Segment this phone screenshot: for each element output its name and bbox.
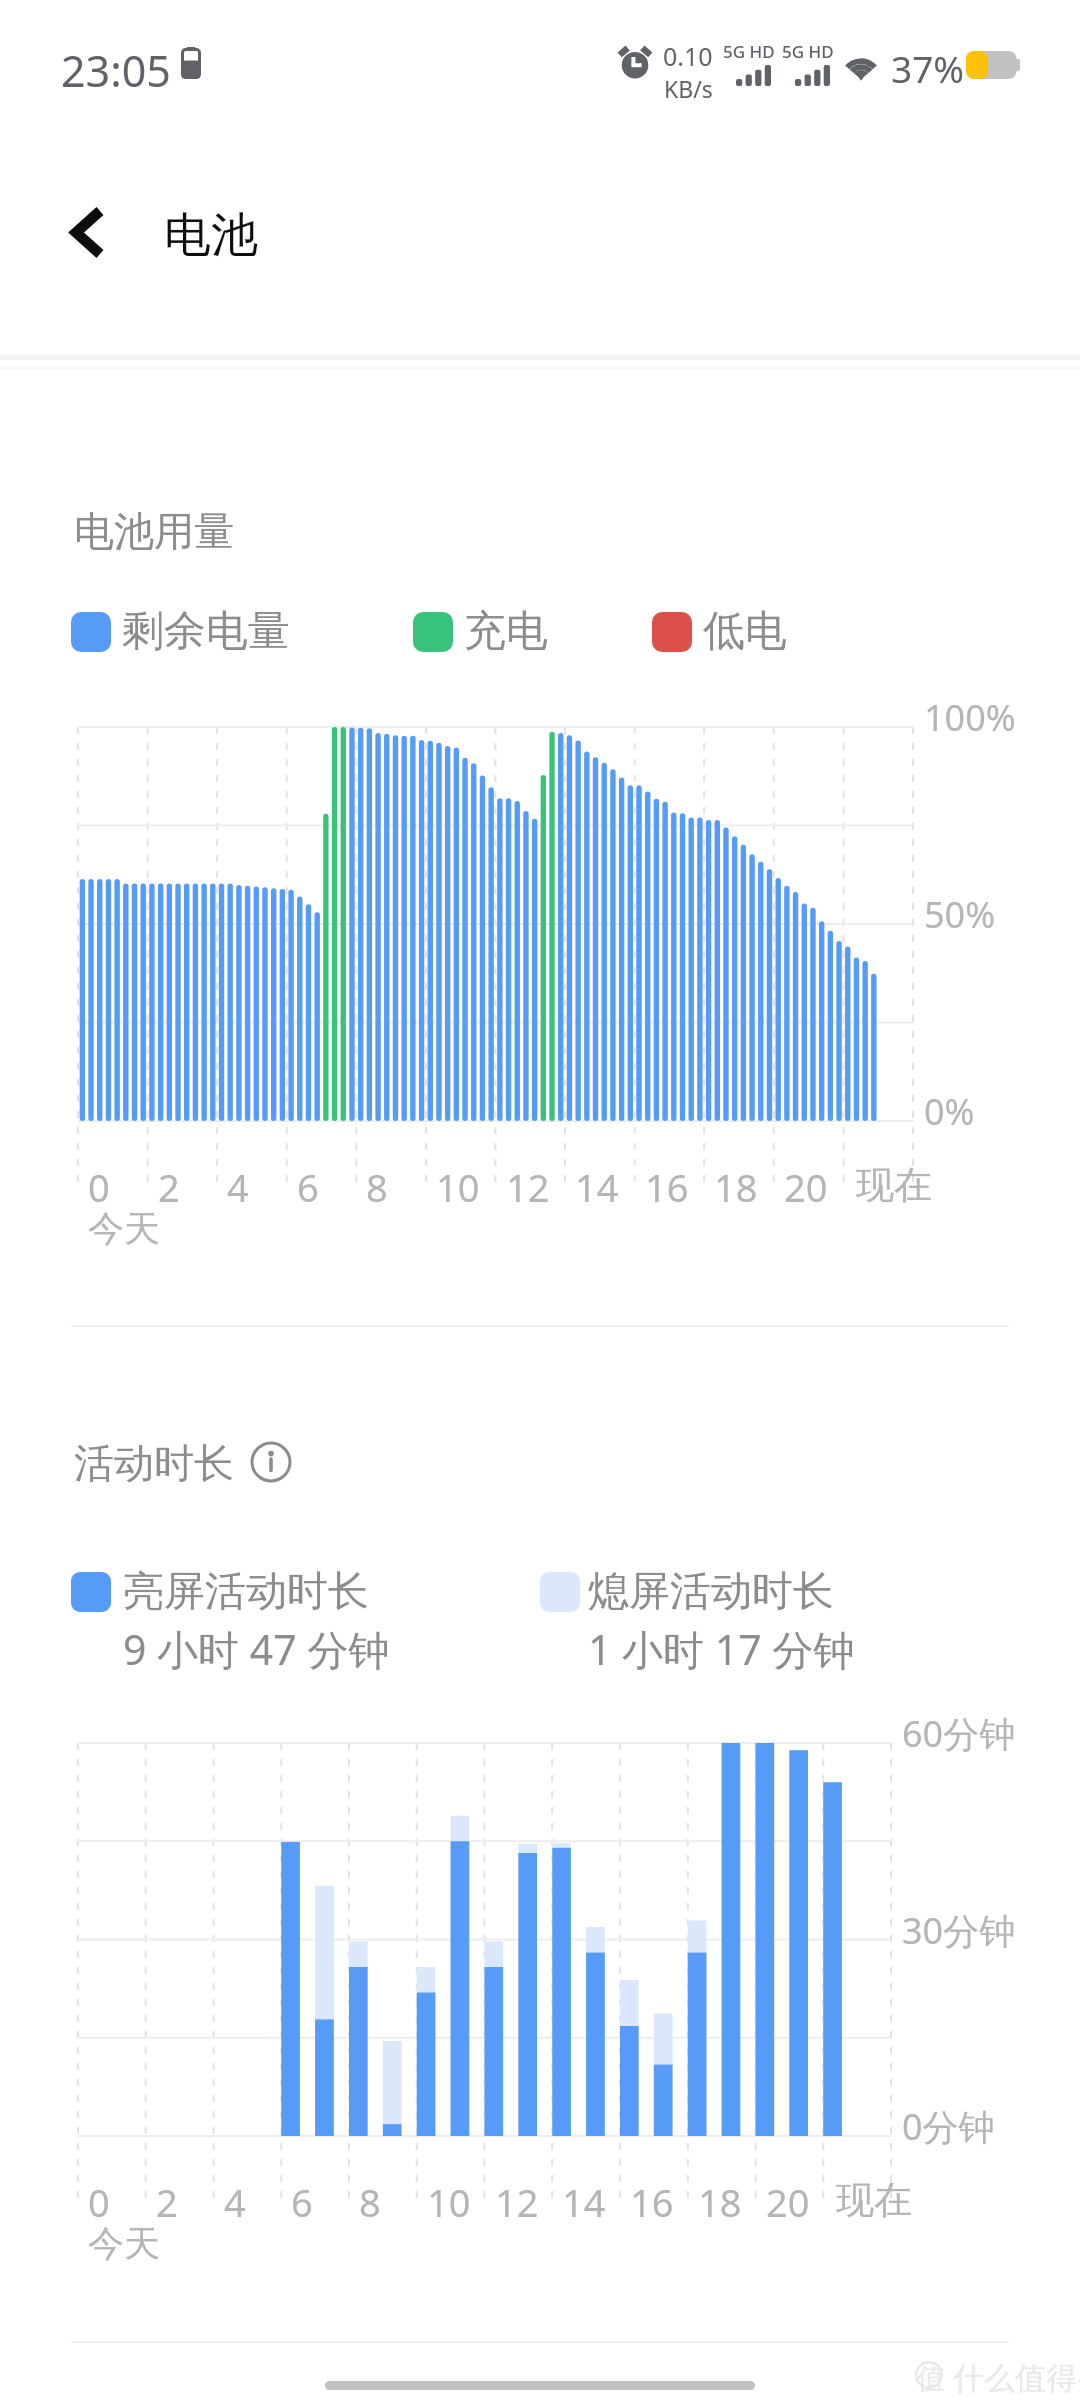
staticText: 剩余电量 <box>122 605 290 658</box>
staticText: 8 <box>359 2176 381 2228</box>
staticText: 12 <box>495 2176 539 2228</box>
staticText: 16 <box>645 1161 689 1213</box>
staticText: 0分钟 <box>902 2102 995 2151</box>
button[interactable]: Back <box>35 178 145 288</box>
staticText: 什么值得买 <box>953 2359 1080 2398</box>
staticText: 现在 <box>836 2176 912 2224</box>
button[interactable]: 剩余电量 <box>71 605 290 658</box>
staticText: 8 <box>366 1161 388 1213</box>
staticText: 14 <box>562 2176 606 2228</box>
staticText: 6 <box>297 1161 319 1213</box>
staticText: 12 <box>506 1161 550 1213</box>
staticText: 4 <box>227 1161 249 1213</box>
staticText: 现在 <box>856 1161 932 1209</box>
staticText: 今天 <box>88 2221 160 2266</box>
staticText: 低电 <box>703 605 787 658</box>
staticText: 2 <box>158 1161 180 1213</box>
staticText: 电池用量 <box>74 506 234 556</box>
staticText: 16 <box>630 2176 674 2228</box>
staticText: 0% <box>924 1087 975 1136</box>
staticText: 100% <box>924 693 1016 742</box>
staticText: 4 <box>224 2176 246 2228</box>
staticText: 20 <box>766 2176 810 2228</box>
staticText: 0 <box>88 2176 110 2228</box>
staticText: 10 <box>436 1161 480 1213</box>
staticText: 18 <box>714 1161 758 1213</box>
staticText: 电池 <box>164 206 258 265</box>
button[interactable]: 充电 <box>413 605 548 658</box>
staticText: 值 <box>917 2361 945 2396</box>
staticText: 18 <box>698 2176 742 2228</box>
staticText: 5G HD <box>782 40 834 63</box>
staticText: 6 <box>291 2176 313 2228</box>
button[interactable]: 低电 <box>652 605 787 658</box>
staticText: 熄屏活动时长 <box>588 1566 834 1618</box>
staticText: 0.10 <box>663 39 713 73</box>
staticText: 30分钟 <box>902 1906 1016 1955</box>
staticText: 0 <box>88 1161 110 1213</box>
staticText: 60分钟 <box>902 1709 1016 1758</box>
staticText: 活动时长 <box>74 1438 234 1488</box>
staticText: 2 <box>156 2176 178 2228</box>
button[interactable]: Info <box>250 1441 292 1483</box>
staticText: 9 小时 47 分钟 <box>123 1621 390 1677</box>
staticText: 今天 <box>88 1206 160 1251</box>
staticText: 亮屏活动时长 <box>123 1566 369 1618</box>
staticText: 20 <box>784 1161 828 1213</box>
staticText: 50% <box>924 890 996 939</box>
staticText: 37% <box>891 43 965 93</box>
staticText: 14 <box>575 1161 619 1213</box>
staticText: KB/s <box>664 73 713 104</box>
staticText: 10 <box>427 2176 471 2228</box>
staticText: 充电 <box>464 605 548 658</box>
staticText: 23:05 <box>61 41 171 100</box>
staticText: 5G HD <box>723 40 775 63</box>
staticText: 1 小时 17 分钟 <box>588 1621 855 1677</box>
